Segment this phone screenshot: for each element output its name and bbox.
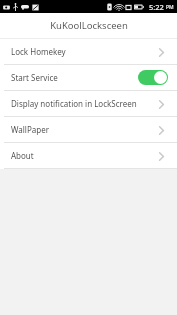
- staticText: PM: [166, 4, 174, 11]
- other: Open: [154, 149, 168, 163]
- button[interactable]: About: [0, 143, 177, 168]
- staticText: About: [11, 150, 154, 161]
- other: Open: [154, 123, 168, 137]
- staticText: 5:22: [149, 2, 164, 12]
- other: Open: [154, 97, 168, 111]
- button[interactable]: Start Service toggle, on: [138, 70, 168, 85]
- staticText: Lock Homekey: [11, 46, 154, 57]
- staticText: KuKoolLocksceen: [50, 19, 128, 32]
- staticText: WallPaper: [11, 124, 154, 135]
- button[interactable]: WallPaper: [0, 117, 177, 142]
- button[interactable]: Lock Homekey: [0, 39, 177, 64]
- staticText: Start Service: [11, 72, 138, 83]
- other: Open: [154, 45, 168, 59]
- button[interactable]: Display notification in LockScreen: [0, 91, 177, 116]
- staticText: Display notification in LockScreen: [11, 98, 154, 109]
- button[interactable]: Start Service: [0, 65, 177, 90]
